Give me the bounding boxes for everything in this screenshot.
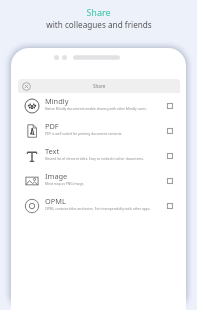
staticText: Mindly xyxy=(45,96,69,106)
button[interactable]: Select Image xyxy=(164,175,176,187)
staticText: PDF xyxy=(45,121,59,131)
button[interactable]: Select PDF xyxy=(164,125,176,137)
button[interactable]: Select Mindly xyxy=(164,100,176,112)
button[interactable]: Text xyxy=(18,143,180,168)
staticText: PDF is well suited for printing document… xyxy=(45,131,123,135)
staticText: Share xyxy=(86,6,111,18)
staticText: with colleagues and friends xyxy=(46,19,152,30)
staticText: Image xyxy=(45,171,68,181)
button[interactable]: Select OPML xyxy=(164,200,176,212)
staticText: Native Mindly documents enable sharing w… xyxy=(45,106,147,110)
button[interactable]: Mindly xyxy=(18,93,180,118)
staticText: Mind map as PNG image. xyxy=(45,181,85,185)
button[interactable]: PDF xyxy=(18,118,180,143)
staticText: Share xyxy=(93,83,106,89)
button[interactable]: Select Text xyxy=(164,150,176,162)
button[interactable]: OPML xyxy=(18,193,180,218)
button[interactable]: Close xyxy=(20,80,32,92)
staticText: Text xyxy=(45,146,60,156)
staticText: Nested list of element titles. Easy to e… xyxy=(45,156,144,160)
button[interactable]: Image xyxy=(18,168,180,193)
staticText: OPML contains titles and notes. For inte… xyxy=(45,206,151,210)
staticText: OPML xyxy=(45,196,66,206)
